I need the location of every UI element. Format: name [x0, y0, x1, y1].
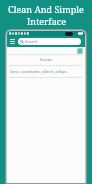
- staticText: Interface: [27, 15, 66, 27]
- button[interactable]: Search: [18, 38, 81, 45]
- button[interactable]: Sortas: [7, 57, 85, 62]
- button[interactable]: Menu: [9, 38, 16, 45]
- staticText: Sortas: [40, 57, 52, 62]
- staticText: Search: [25, 39, 38, 44]
- button[interactable]: Sorts, coordinates, collects, collaps: [10, 69, 82, 74]
- staticText: Sorts, coordinates, collects, collaps: [10, 69, 67, 74]
- button[interactable]: Grid view: [78, 49, 82, 53]
- staticText: Clean And Simple: [8, 3, 84, 15]
